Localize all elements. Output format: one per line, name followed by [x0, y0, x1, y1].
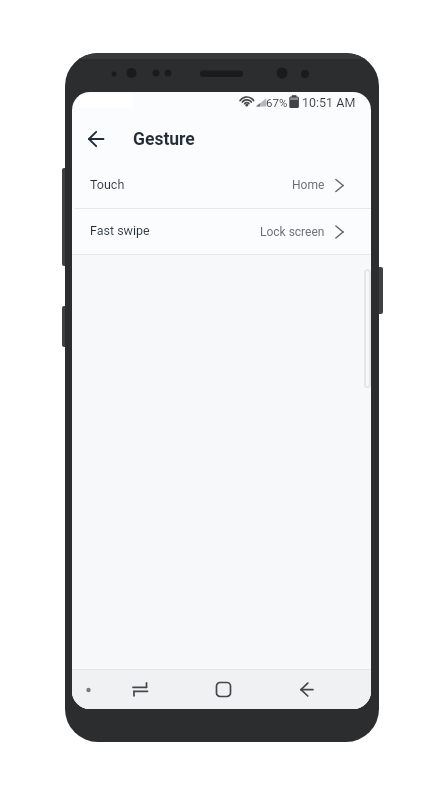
staticText: Fast swipe — [90, 223, 150, 238]
staticText: Touch — [90, 177, 125, 192]
button[interactable]: Fast swipe — [72, 209, 371, 254]
staticText: Lock screen — [260, 225, 325, 239]
staticText: Gesture — [133, 129, 195, 150]
button[interactable] — [171, 669, 271, 709]
button[interactable]: Touch — [72, 162, 371, 208]
button[interactable] — [72, 669, 171, 709]
staticText: 67% — [266, 96, 288, 109]
staticText: 10:51 AM — [302, 95, 356, 110]
button[interactable] — [82, 125, 110, 153]
staticText: Home — [292, 178, 325, 192]
button[interactable] — [271, 669, 371, 709]
